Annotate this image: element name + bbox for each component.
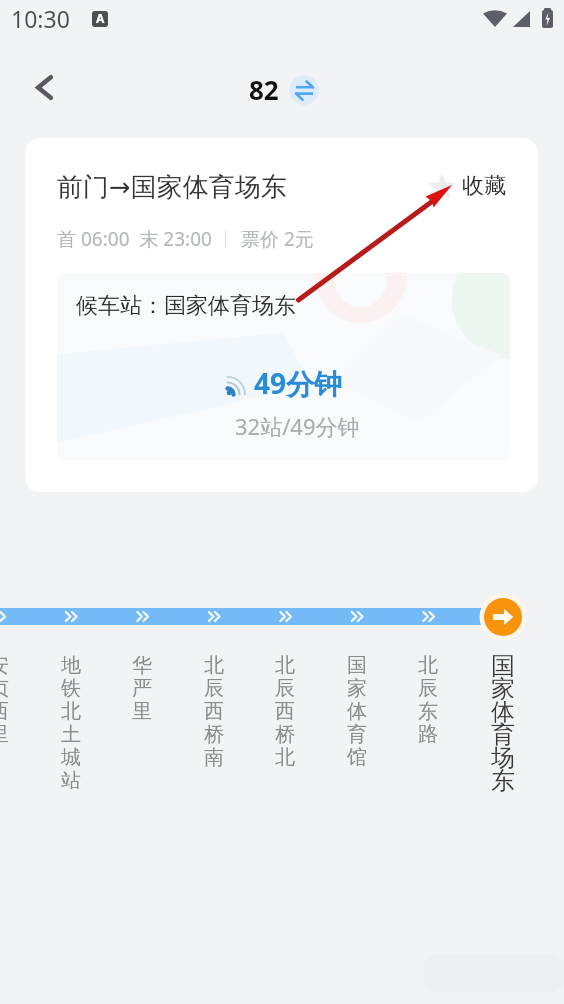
button[interactable]: 82 xyxy=(249,72,319,107)
staticText: 49分钟 xyxy=(254,364,343,402)
staticText: 北 辰 西 桥 北 xyxy=(275,653,295,770)
staticText: 北 辰 东 路 xyxy=(418,653,438,747)
staticText: 地 铁 北 土 城 站 xyxy=(61,653,81,793)
button[interactable]: Go to destination xyxy=(479,593,527,641)
staticText: 收藏 xyxy=(462,172,506,200)
staticText: A xyxy=(96,11,105,26)
staticText: 32站/49分钟 xyxy=(235,411,360,441)
staticText: 候车站：国家体育场东 xyxy=(76,292,296,320)
button[interactable]: 前门→国家体育场东 xyxy=(25,138,538,492)
staticText: 安 贞 西 里 xyxy=(0,653,9,747)
staticText: 华 严 里 xyxy=(132,653,152,724)
staticText: 北 辰 西 桥 南 xyxy=(204,653,224,770)
staticText: 10:30 xyxy=(11,3,70,34)
staticText: 82 xyxy=(249,72,279,107)
staticText: 前门→国家体育场东 xyxy=(57,171,287,204)
staticText: 国 家 体 育 馆 xyxy=(347,653,367,770)
staticText: 票价 2元 xyxy=(241,226,314,252)
button[interactable]: Back xyxy=(24,67,64,107)
staticText: 国 家 体 育 场 东 xyxy=(491,651,515,796)
staticText: 首 06:00 末 23:00 xyxy=(57,226,212,252)
button[interactable]: 收藏 xyxy=(428,172,506,200)
